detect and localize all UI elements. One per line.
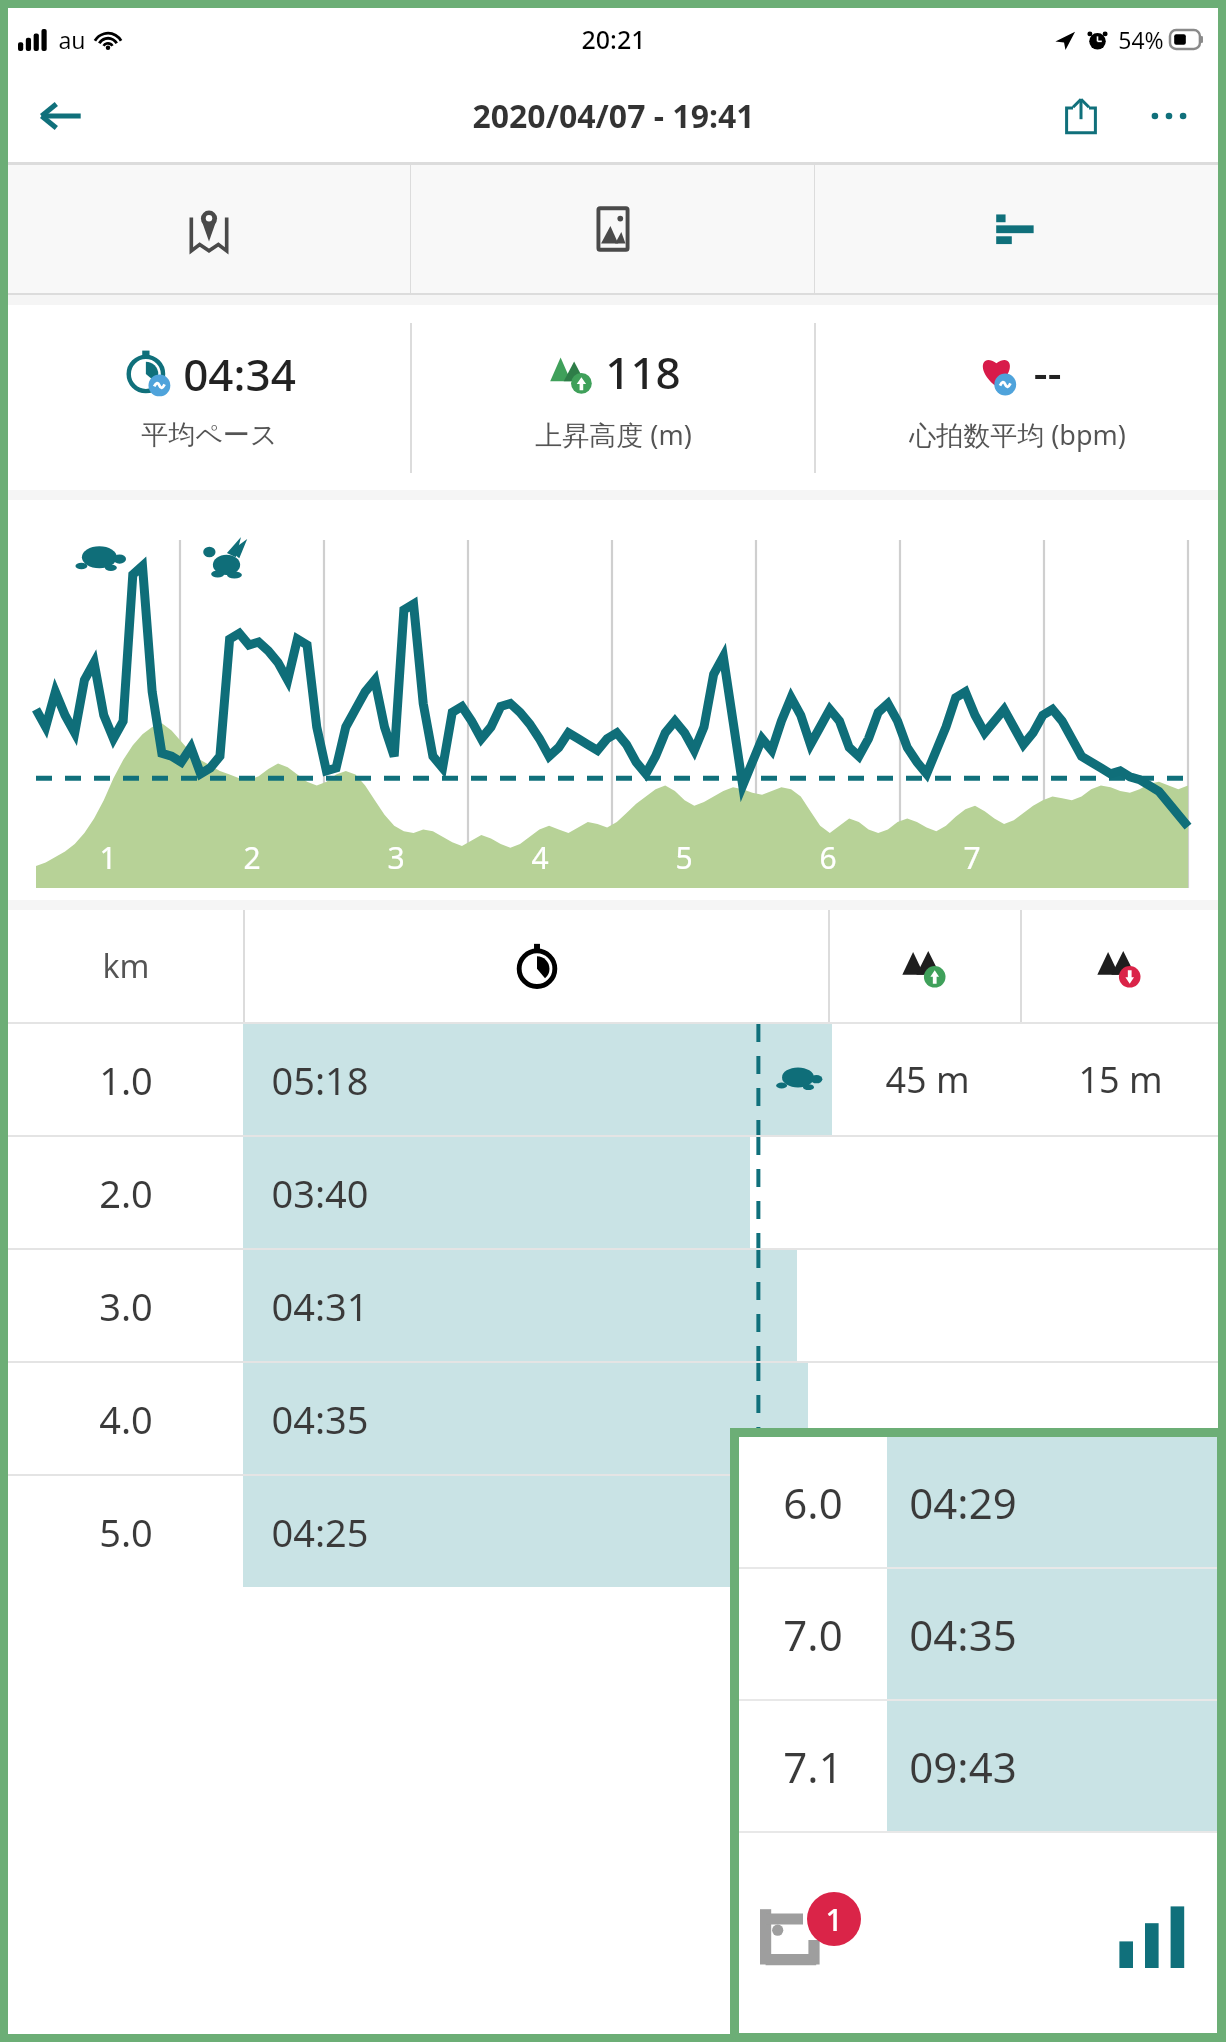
staticText: 118 — [605, 342, 681, 402]
button[interactable]: Statistics — [1113, 1898, 1193, 1968]
button[interactable]: 1.0 — [8, 1024, 1218, 1135]
button[interactable]: 7.0 — [739, 1569, 1217, 1699]
staticText: 05:18 — [271, 1054, 369, 1106]
staticText: 1 — [825, 1899, 843, 1940]
staticText: 15 m — [1078, 1055, 1163, 1104]
staticText: 45 m — [885, 1055, 970, 1104]
staticText: 09:43 — [909, 1738, 1017, 1795]
staticText: 54% — [1118, 24, 1164, 55]
button[interactable]: 2.0 — [8, 1137, 1218, 1248]
staticText: 04:35 — [909, 1606, 1017, 1663]
button[interactable]: Share — [1050, 85, 1112, 147]
staticText: 04:29 — [909, 1474, 1017, 1531]
button[interactable]: Notifications — [759, 1898, 869, 1968]
button[interactable]: More options — [1138, 85, 1200, 147]
staticText: 2020/04/07 - 19:41 — [472, 94, 755, 138]
staticText: 6 — [819, 837, 837, 878]
staticText: 2 — [243, 837, 261, 878]
button[interactable]: Back — [30, 86, 90, 146]
staticText: 7.0 — [783, 1606, 843, 1663]
staticText: 03:40 — [271, 1167, 369, 1219]
staticText: 2.0 — [99, 1167, 153, 1219]
staticText: 3 — [387, 837, 405, 878]
staticText: -- — [1033, 342, 1062, 402]
staticText: 5.0 — [99, 1506, 153, 1558]
button[interactable]: Map tab — [8, 165, 410, 293]
staticText: 3.0 — [99, 1280, 153, 1332]
staticText: 20:21 — [581, 22, 646, 56]
staticText: 04:31 — [271, 1280, 369, 1332]
staticText: 5 — [675, 837, 693, 878]
button[interactable]: Photos tab — [411, 165, 814, 293]
button[interactable]: 04:34 — [8, 305, 410, 490]
button[interactable]: 1 — [8, 500, 1218, 900]
staticText: 04:34 — [183, 344, 296, 404]
staticText: 上昇高度 (m) — [535, 416, 692, 453]
staticText: 7.1 — [783, 1738, 843, 1795]
staticText: 1.0 — [99, 1054, 153, 1106]
button[interactable]: 5.0 — [8, 1476, 1218, 1587]
staticText: 04:35 — [271, 1393, 369, 1445]
button[interactable]: 7.1 — [739, 1701, 1217, 1831]
button[interactable]: 4.0 — [8, 1363, 1218, 1474]
staticText: 4.0 — [99, 1393, 153, 1445]
staticText: 平均ペース — [141, 418, 278, 452]
button[interactable]: Stats tab — [815, 165, 1218, 293]
staticText: 1 — [99, 837, 117, 878]
staticText: 6.0 — [783, 1474, 843, 1531]
staticText: 04:25 — [271, 1506, 369, 1558]
staticText: 心拍数平均 (bpm) — [909, 416, 1126, 453]
staticText: km — [102, 944, 150, 988]
staticText: au — [58, 24, 86, 55]
button[interactable]: -- — [816, 305, 1218, 490]
button[interactable]: 6.0 — [739, 1437, 1217, 1567]
staticText: 4 — [531, 837, 549, 878]
button[interactable]: 3.0 — [8, 1250, 1218, 1361]
button[interactable]: 118 — [412, 305, 814, 490]
staticText: 7 — [963, 837, 981, 878]
